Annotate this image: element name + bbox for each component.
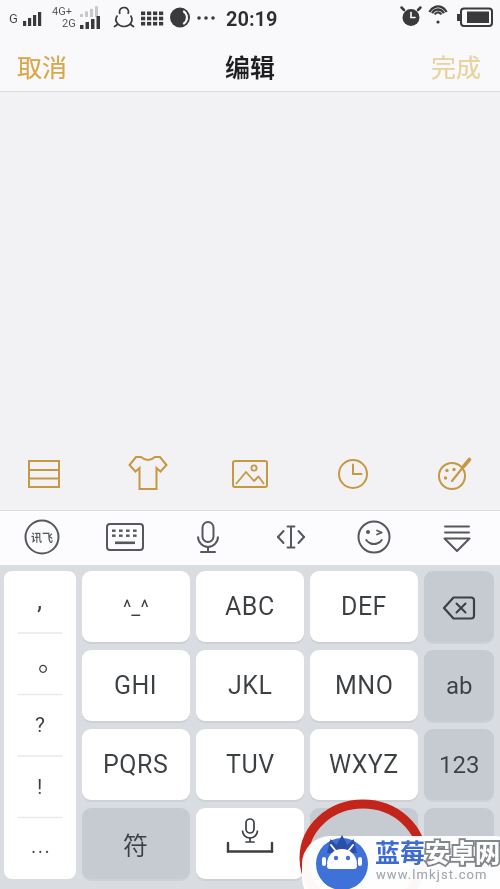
staticText: WXYZ — [329, 750, 399, 779]
button[interactable]: WXYZ — [310, 729, 418, 800]
staticText: 2G — [62, 17, 76, 30]
staticText: 编辑 — [225, 48, 276, 84]
button[interactable]: JKL — [196, 650, 304, 721]
button[interactable] — [327, 448, 379, 500]
button[interactable] — [224, 448, 276, 500]
staticText: 20:19 — [226, 7, 278, 30]
staticText: ^_^ — [123, 595, 149, 618]
button[interactable]: ^_^ — [82, 571, 190, 642]
button[interactable] — [433, 513, 481, 561]
staticText: ! — [37, 775, 43, 800]
button[interactable]: ab — [424, 650, 494, 721]
button[interactable] — [350, 513, 398, 561]
staticText: MNO — [335, 671, 394, 700]
button[interactable]: 取消 — [17, 48, 81, 84]
staticText: ab — [446, 672, 473, 700]
staticText: 安卓网 — [425, 833, 500, 869]
button[interactable]: PQRS — [82, 729, 190, 800]
staticText: G — [9, 11, 18, 26]
staticText: ? — [35, 713, 45, 738]
staticText: 。 — [38, 641, 65, 679]
staticText: 蓝莓 — [375, 833, 426, 869]
button[interactable] — [101, 513, 149, 561]
button[interactable] — [424, 808, 494, 879]
button[interactable]: TUV — [196, 729, 304, 800]
button[interactable] — [184, 513, 232, 561]
button[interactable] — [267, 513, 315, 561]
staticText: JKL — [228, 671, 273, 700]
staticText: DEF — [341, 592, 387, 621]
button[interactable] — [18, 513, 66, 561]
button[interactable]: MNO — [310, 650, 418, 721]
staticText: 讯飞 — [31, 529, 53, 545]
staticText: 4G+ — [52, 5, 72, 18]
staticText: 符 — [123, 826, 149, 862]
button[interactable]: GHI — [82, 650, 190, 721]
staticText: ABC — [225, 592, 275, 621]
button[interactable]: 完成 — [418, 48, 482, 84]
button[interactable] — [310, 808, 418, 879]
staticText: www.lmkjst.com — [376, 867, 488, 882]
button[interactable] — [196, 808, 304, 879]
staticText: PQRS — [103, 750, 169, 779]
button[interactable]: 符 — [82, 808, 190, 879]
button[interactable] — [424, 571, 494, 642]
button[interactable] — [430, 448, 482, 500]
staticText: , — [37, 585, 43, 615]
button[interactable] — [18, 448, 70, 500]
button[interactable]: ABC — [196, 571, 304, 642]
staticText: TUV — [226, 750, 275, 779]
button[interactable] — [4, 571, 76, 879]
staticText: 取消 — [17, 48, 68, 84]
staticText: 完成 — [431, 48, 482, 84]
staticText: 123 — [439, 751, 480, 779]
button[interactable] — [121, 448, 173, 500]
staticText: 安卓网 — [425, 833, 500, 869]
button[interactable]: 123 — [424, 729, 494, 800]
staticText: 蓝莓 — [375, 833, 426, 869]
staticText: ... — [31, 834, 52, 857]
button[interactable]: DEF — [310, 571, 418, 642]
staticText: GHI — [114, 671, 158, 700]
